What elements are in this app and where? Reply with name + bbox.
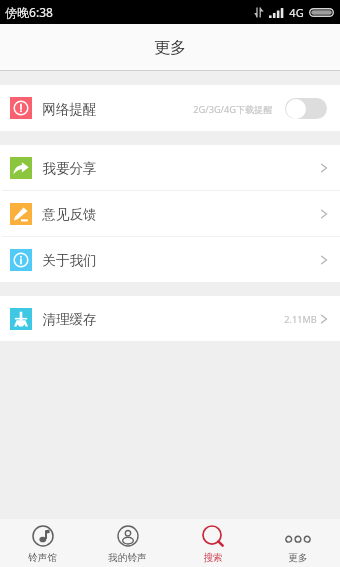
other: Open — [321, 255, 327, 265]
button[interactable]: 清理缓存 — [0, 296, 340, 341]
button[interactable]: 意见反馈 — [0, 191, 340, 236]
staticText: 更多 — [288, 552, 308, 564]
button[interactable]: 铃声馆 — [0, 519, 85, 567]
button[interactable]: 我要分享 — [0, 145, 340, 190]
staticText: 清理缓存 — [42, 311, 97, 328]
staticText: 2G/3G/4G下载提醒 — [193, 103, 273, 116]
staticText: 铃声馆 — [28, 552, 57, 564]
button[interactable]: Toggle download reminder — [285, 98, 327, 119]
staticText: 我的铃声 — [108, 552, 147, 564]
button[interactable]: 我的铃声 — [85, 519, 170, 567]
staticText: 更多 — [154, 38, 186, 58]
staticText: 网络提醒 — [42, 101, 97, 118]
other: Open — [321, 314, 327, 324]
staticText: 我要分享 — [42, 160, 97, 177]
button[interactable]: 搜索 — [170, 519, 255, 567]
other: Open — [321, 209, 327, 219]
button[interactable]: 网络提醒 — [0, 85, 340, 131]
button[interactable]: 关于我们 — [0, 237, 340, 282]
staticText: 4G — [289, 5, 304, 20]
staticText: 2.11MB — [284, 313, 317, 326]
button[interactable]: 更多 — [255, 519, 340, 567]
other: Open — [321, 163, 327, 173]
staticText: 意见反馈 — [42, 206, 97, 223]
staticText: 傍晚6:38 — [5, 4, 53, 20]
staticText: 搜索 — [203, 552, 223, 564]
staticText: 关于我们 — [42, 252, 97, 269]
